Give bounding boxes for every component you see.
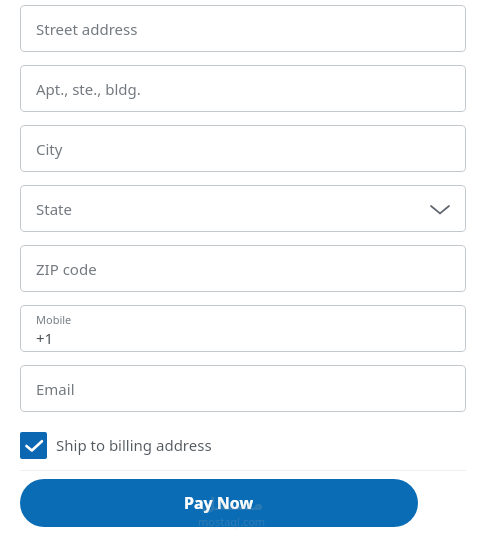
staticText: Apt., ste., bldg. bbox=[36, 79, 141, 99]
staticText: mostaql.com bbox=[198, 514, 266, 529]
staticText: City bbox=[36, 139, 63, 159]
button[interactable]: Email bbox=[20, 365, 466, 412]
button[interactable]: Pay Now bbox=[20, 479, 418, 527]
button[interactable]: State bbox=[20, 185, 466, 232]
staticText: مستقل bbox=[201, 494, 264, 514]
staticText: ZIP code bbox=[36, 259, 97, 279]
button[interactable]: Mobile bbox=[20, 305, 466, 352]
staticText: Email bbox=[36, 379, 75, 399]
button[interactable]: Ship to billing address bbox=[20, 430, 466, 460]
staticText: Ship to billing address bbox=[56, 435, 212, 455]
button[interactable]: Apt., ste., bldg. bbox=[20, 65, 466, 112]
button[interactable]: Street address bbox=[20, 5, 466, 52]
staticText: +1 bbox=[36, 328, 54, 348]
staticText: State bbox=[36, 199, 72, 219]
button[interactable]: ZIP code bbox=[20, 245, 466, 292]
button[interactable]: City bbox=[20, 125, 466, 172]
staticText: Street address bbox=[36, 19, 138, 39]
staticText: Mobile bbox=[36, 312, 72, 327]
staticText: Pay Now bbox=[184, 492, 254, 514]
